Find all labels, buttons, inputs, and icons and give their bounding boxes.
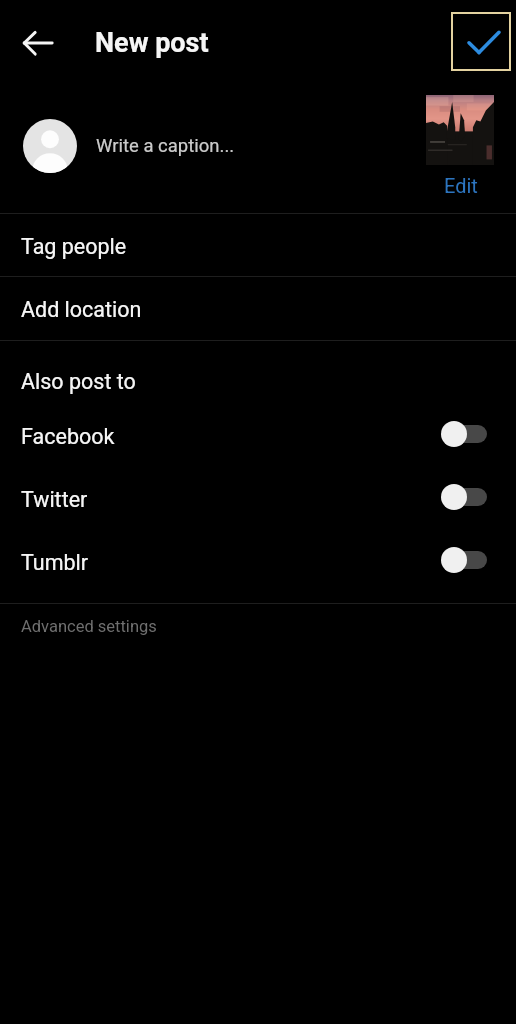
button[interactable]: Advanced settings bbox=[0, 602, 516, 650]
button[interactable]: Post preview bbox=[426, 95, 494, 165]
button[interactable]: Facebook bbox=[0, 405, 516, 467]
staticText: Add location bbox=[21, 297, 142, 322]
staticText: Advanced settings bbox=[21, 617, 157, 636]
staticText: Twitter bbox=[21, 487, 88, 512]
staticText: Tag people bbox=[21, 234, 127, 259]
button[interactable]: Edit bbox=[433, 172, 489, 199]
button[interactable]: Tumblr bbox=[0, 531, 516, 593]
button[interactable]: Add location bbox=[0, 278, 516, 340]
staticText: Also post to bbox=[21, 369, 136, 394]
staticText: New post bbox=[95, 27, 209, 59]
staticText: Write a caption... bbox=[96, 135, 235, 157]
button[interactable]: Back bbox=[14, 19, 62, 67]
staticText: Facebook bbox=[21, 424, 115, 449]
button[interactable]: Share post bbox=[451, 12, 511, 71]
button[interactable]: Write a caption... bbox=[86, 116, 336, 176]
button[interactable]: Profile picture bbox=[23, 119, 77, 173]
staticText: Edit bbox=[444, 174, 478, 197]
button[interactable]: Twitter bbox=[0, 468, 516, 530]
button[interactable]: Tag people bbox=[0, 215, 516, 277]
staticText: Tumblr bbox=[21, 550, 89, 575]
